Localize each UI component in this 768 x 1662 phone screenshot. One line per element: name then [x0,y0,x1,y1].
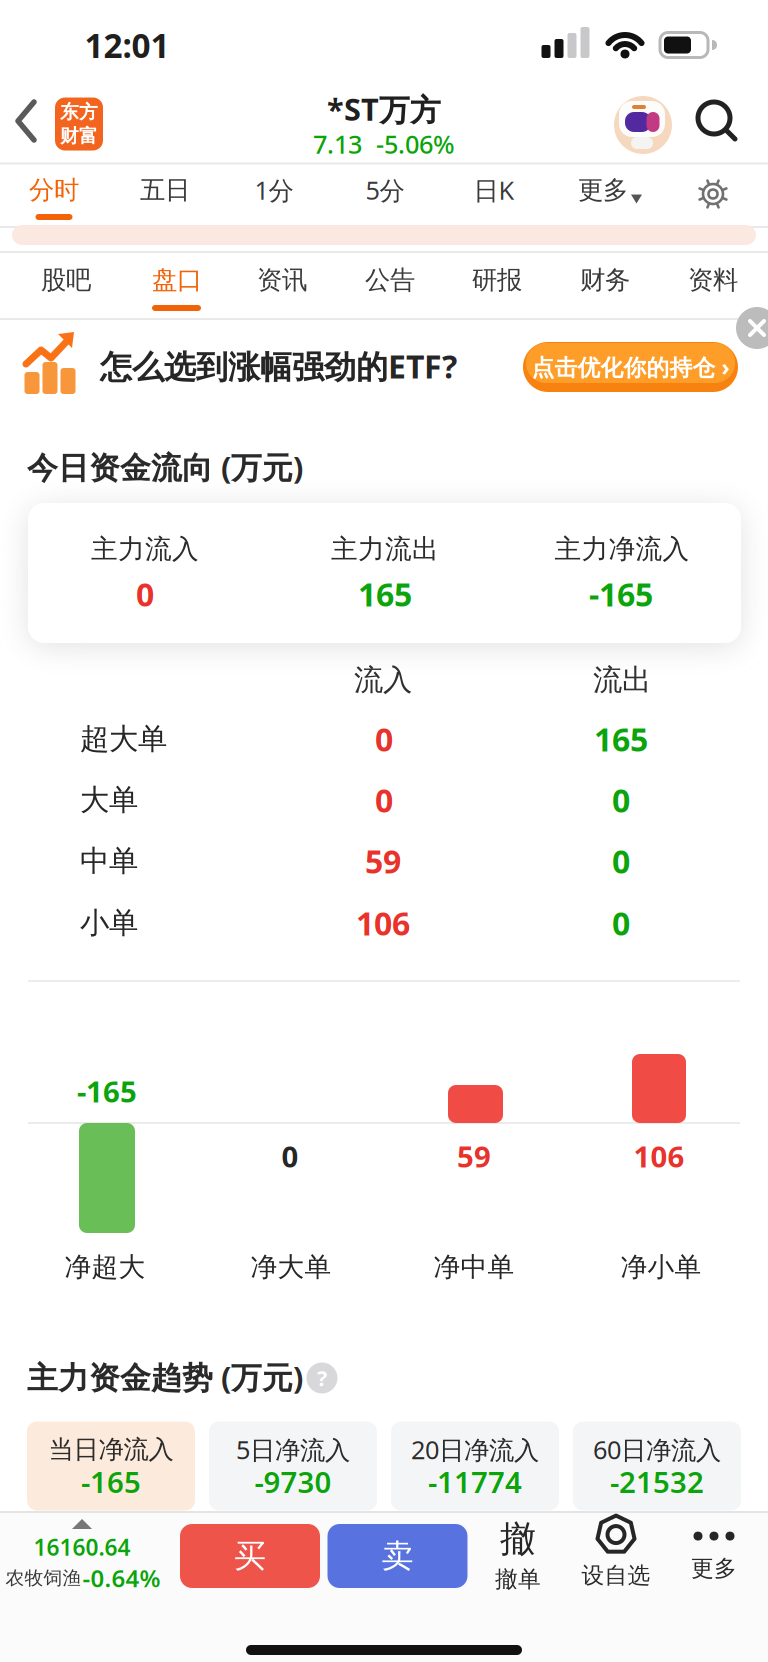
staticText: 净中单 [433,1251,514,1283]
button[interactable]: 智能助手 [614,96,672,154]
staticText: 主力资金趋势 (万元) [27,1357,303,1397]
staticText: 财富 [60,124,98,147]
staticText: -9730 [254,1462,331,1501]
staticText: 165 [594,718,648,760]
staticText: 更多 [578,174,628,205]
staticText: 怎么选到涨幅强劲的ETF? [100,345,457,387]
staticText: ? [317,1364,327,1392]
staticText: 5分 [365,173,404,207]
button[interactable]: 卖 [327,1524,467,1588]
button[interactable]: 财务 [580,264,630,295]
staticText: 公告 [365,264,415,295]
staticText: 资讯 [257,264,307,295]
staticText: 主力净流入 [554,533,689,565]
button[interactable]: 设自选 [581,1515,650,1589]
button[interactable]: 买 [180,1524,320,1588]
staticText: 流入 [354,662,412,698]
staticText: 16160.64 [33,1532,130,1562]
button[interactable]: 60日净流入 [573,1421,741,1510]
staticText: -165 [81,1462,141,1501]
staticText: 59 [457,1136,491,1175]
staticText: 资料 [688,264,738,295]
staticText: 流出 [593,662,651,698]
button[interactable]: 五日 [140,174,190,205]
staticText: *ST万方 [327,89,441,129]
staticText: 59 [365,840,401,882]
button[interactable]: Settings [698,179,728,209]
staticText: -21532 [610,1462,704,1501]
button[interactable]: 撤 [495,1517,541,1593]
button[interactable]: 怎么选到涨幅强劲的ETF? [16,326,506,406]
staticText: 撤 [500,1517,536,1561]
staticText: 106 [356,902,410,944]
staticText: 分时 [29,174,79,205]
staticText: 当日净流入 [48,1434,173,1465]
staticText: 日K [473,173,514,207]
staticText: 净大单 [250,1251,331,1283]
staticText: 小单 [80,905,138,941]
button[interactable]: 点击优化你的持仓 › [523,342,738,392]
button[interactable]: 资料 [688,264,738,295]
staticText: 净超大 [64,1251,145,1283]
staticText: 0 [375,718,393,760]
button[interactable]: 盘口 [152,264,202,295]
button[interactable]: 日K [473,173,514,207]
button[interactable]: Search [694,98,740,144]
staticText: 盘口 [152,264,202,295]
button[interactable]: 研报 [472,264,522,295]
staticText: 0 [136,573,154,615]
staticText: 设自选 [581,1562,650,1589]
staticText: 主力流入 [91,533,199,565]
button[interactable]: 1分 [254,173,293,207]
staticText: 12:01 [84,23,169,67]
staticText: -165 [589,573,653,615]
staticText: 大单 [80,782,138,818]
staticText: 0 [612,902,630,944]
button[interactable]: Back [14,93,54,149]
staticText: 净小单 [620,1251,701,1283]
button[interactable]: 5日净流入 [209,1421,377,1510]
staticText: 更多 [691,1555,737,1582]
button[interactable]: 5分 [365,173,404,207]
staticText: 农牧饲渔 [5,1566,81,1589]
staticText: -0.64% [82,1562,160,1594]
button[interactable]: 更多 [691,1532,737,1582]
staticText: -165 [77,1071,137,1110]
staticText: 主力流出 [331,533,439,565]
staticText: 撤单 [495,1565,541,1593]
staticText: 财务 [580,264,630,295]
staticText: 今日资金流向 (万元) [27,447,303,487]
staticText: 东方 [60,101,98,123]
button[interactable]: 20日净流入 [391,1421,559,1510]
staticText: 0 [375,779,393,821]
staticText: 20日净流入 [411,1433,539,1466]
button[interactable]: 16160.64 [0,1496,166,1606]
button[interactable]: 股吧 [41,264,91,295]
button[interactable]: 东方财富 [55,97,103,150]
staticText: 点击优化你的持仓 › [531,352,729,382]
staticText: 106 [633,1136,684,1175]
button[interactable]: 公告 [365,264,415,295]
staticText: 五日 [140,174,190,205]
staticText: 5日净流入 [236,1433,350,1466]
staticText: 165 [358,573,412,615]
staticText: -11774 [428,1462,522,1501]
staticText: 7.13 -5.06% [313,127,455,161]
button[interactable]: 分时 [29,174,79,205]
staticText: 1分 [254,173,293,207]
staticText: 0 [281,1136,298,1175]
button[interactable]: Close [736,307,768,349]
staticText: 0 [612,840,630,882]
staticText: 中单 [80,843,138,879]
button[interactable]: 资讯 [257,264,307,295]
button[interactable]: 更多 [578,174,642,205]
button[interactable]: 当日净流入 [27,1421,195,1510]
staticText: 60日净流入 [593,1433,721,1466]
staticText: 买 [234,1536,266,1576]
staticText: 研报 [472,264,522,295]
staticText: 卖 [381,1536,413,1576]
staticText: 0 [612,779,630,821]
staticText: 超大单 [80,721,167,757]
staticText: 股吧 [41,264,91,295]
